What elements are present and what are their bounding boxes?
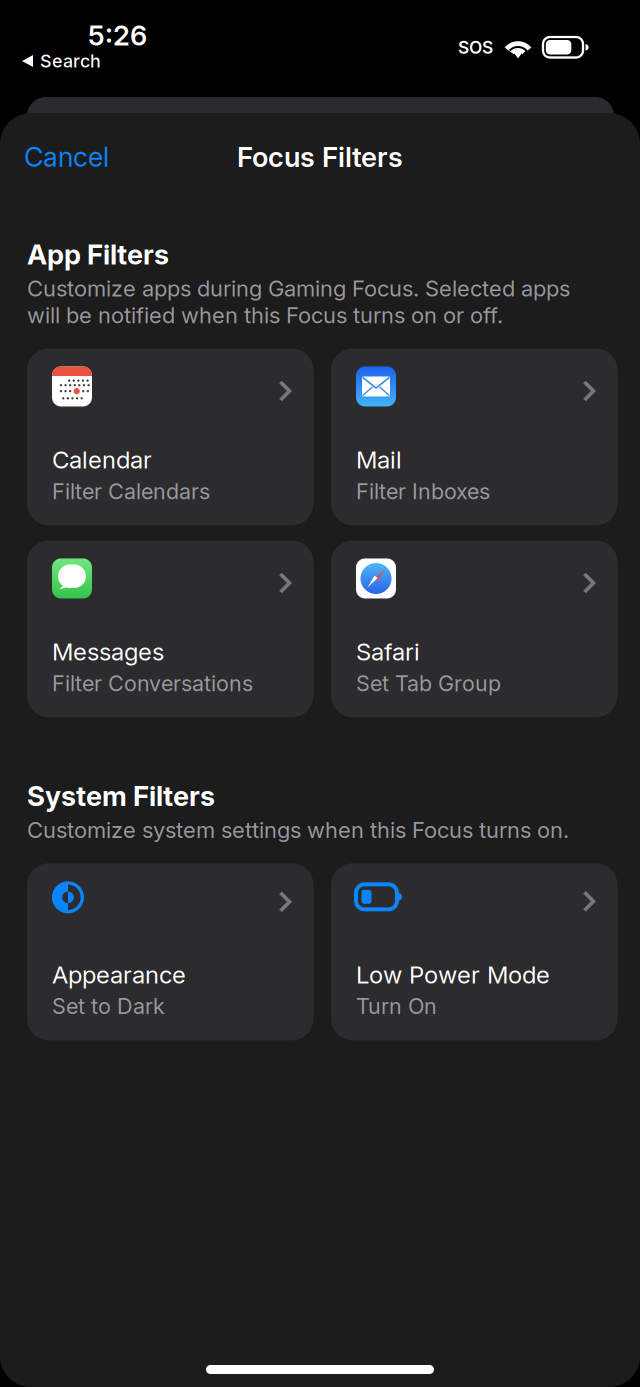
staticText: Safari [356, 637, 420, 666]
staticText: Focus Filters [237, 140, 403, 174]
staticText: Calendar [52, 445, 152, 474]
button[interactable]: Appearance [27, 863, 313, 1040]
button[interactable]: Mail [331, 348, 617, 525]
staticText: Set Tab Group [356, 670, 501, 696]
staticText: Mail [356, 445, 402, 474]
button[interactable]: Low Power Mode [331, 863, 617, 1040]
staticText: Filter Calendars [52, 478, 210, 504]
staticText: Low Power Mode [356, 960, 550, 989]
staticText: 5:26 [88, 19, 147, 52]
staticText: Appearance [52, 960, 186, 989]
staticText: Filter Conversations [52, 670, 253, 696]
button[interactable]: Messages [27, 540, 313, 717]
staticText: Search [40, 50, 101, 72]
staticText: SOS [458, 37, 493, 58]
staticText: System Filters [27, 779, 215, 813]
staticText: Set to Dark [52, 993, 165, 1019]
staticText: Customize system settings when this Focu… [27, 817, 569, 843]
staticText: Customize apps during Gaming Focus. Sele… [27, 275, 570, 328]
button[interactable]: Safari [331, 540, 617, 717]
button[interactable]: Cancel [24, 141, 109, 173]
staticText: Turn On [356, 993, 437, 1019]
staticText: Cancel [24, 141, 109, 173]
button[interactable]: Calendar [27, 348, 313, 525]
staticText: App Filters [27, 238, 169, 271]
staticText: Filter Inboxes [356, 478, 490, 504]
staticText: Messages [52, 637, 164, 666]
